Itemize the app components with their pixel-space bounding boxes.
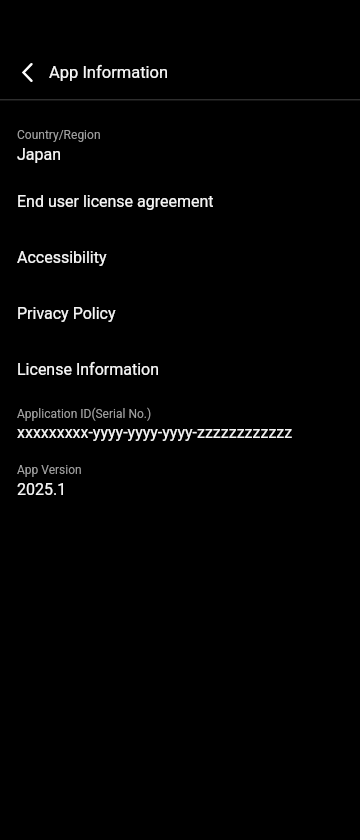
staticText: App Information xyxy=(49,63,169,82)
staticText: Japan xyxy=(17,145,62,164)
staticText: End user license agreement xyxy=(17,192,214,211)
button[interactable]: Navigate back xyxy=(11,52,51,92)
button[interactable]: License Information xyxy=(0,325,360,381)
button[interactable]: Accessibility xyxy=(0,213,360,269)
button[interactable]: End user license agreement xyxy=(0,157,360,213)
staticText: Privacy Policy xyxy=(17,304,116,323)
staticText: Application ID(Serial No.) xyxy=(17,407,152,421)
button[interactable]: Privacy Policy xyxy=(0,269,360,325)
button[interactable]: Country/Region xyxy=(0,101,360,157)
staticText: 2025.1 xyxy=(17,480,67,499)
staticText: Country/Region xyxy=(17,128,101,142)
staticText: xxxxxxxxx-yyyy-yyyy-yyyy-zzzzzzzzzzzz xyxy=(17,423,293,442)
staticText: Accessibility xyxy=(17,248,107,267)
staticText: App Version xyxy=(17,463,82,477)
staticText: License Information xyxy=(17,360,160,379)
